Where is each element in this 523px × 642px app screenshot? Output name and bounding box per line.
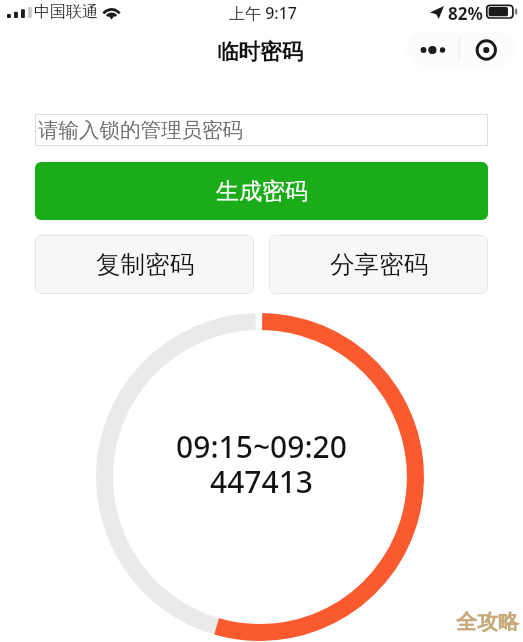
staticText: 上午 9:17 <box>229 2 297 24</box>
staticText: 09:15~09:20 447413 <box>176 426 347 502</box>
button[interactable]: 分享密码 <box>269 235 488 294</box>
staticText: 中国联通 <box>34 2 98 22</box>
staticText: 请输入锁的管理员密码 <box>38 117 243 143</box>
staticText: 全攻略 <box>456 609 519 635</box>
button[interactable]: 请输入锁的管理员密码 <box>35 114 488 146</box>
staticText: 临时密码 <box>217 38 303 65</box>
staticText: 82% <box>448 2 483 25</box>
button[interactable]: 复制密码 <box>35 235 254 294</box>
staticText: 分享密码 <box>330 249 428 280</box>
button[interactable]: 生成密码 <box>35 162 488 220</box>
button[interactable]: More options <box>406 32 458 66</box>
staticText: 复制密码 <box>96 249 194 280</box>
staticText: 生成密码 <box>216 177 308 206</box>
button[interactable]: Close mini program <box>460 32 515 66</box>
